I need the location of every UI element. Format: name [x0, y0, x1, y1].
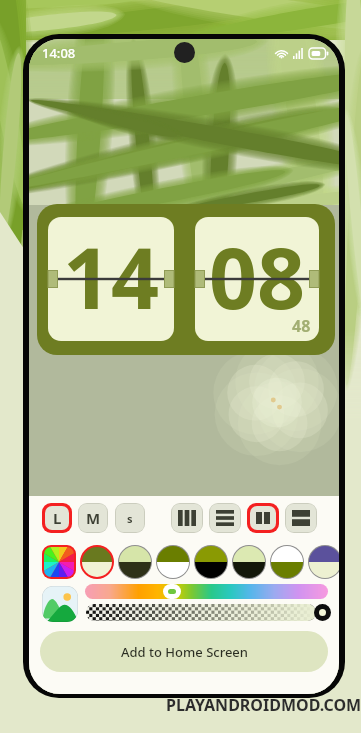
button[interactable]: Hue — [85, 584, 328, 599]
staticText: 14:08 — [42, 44, 76, 62]
staticText: 08 — [209, 219, 306, 333]
button[interactable]: Layout style 1 — [172, 504, 202, 532]
button[interactable]: L — [45, 506, 69, 530]
button[interactable]: Colour preset — [195, 546, 227, 578]
button[interactable]: Colour preset — [233, 546, 265, 578]
button[interactable]: Colour preset — [82, 547, 112, 577]
staticText: PLAYANDROIDMOD.COM — [166, 694, 361, 716]
button[interactable]: Colour preset — [119, 546, 151, 578]
button[interactable]: Add to Home Screen — [40, 631, 328, 672]
button[interactable]: Layout style 4 — [286, 504, 316, 532]
button[interactable]: Pick background image — [42, 586, 78, 622]
staticText: 14 — [63, 219, 160, 333]
staticText: Add to Home Screen — [121, 643, 248, 661]
button[interactable]: Layout style 2 — [210, 504, 240, 532]
button[interactable]: s — [116, 504, 144, 532]
staticText: L — [53, 508, 62, 528]
button[interactable]: Colour preset — [157, 546, 189, 578]
button[interactable]: M — [79, 504, 107, 532]
staticText: 48 — [292, 315, 311, 337]
button[interactable]: Layout style 3 — [250, 506, 276, 530]
button[interactable]: Colour preset — [309, 546, 339, 578]
button[interactable]: Opacity — [86, 604, 331, 621]
button[interactable]: Colour preset — [271, 546, 303, 578]
button[interactable]: Custom colour — [44, 547, 74, 577]
staticText: s — [127, 511, 133, 526]
staticText: M — [86, 508, 101, 528]
